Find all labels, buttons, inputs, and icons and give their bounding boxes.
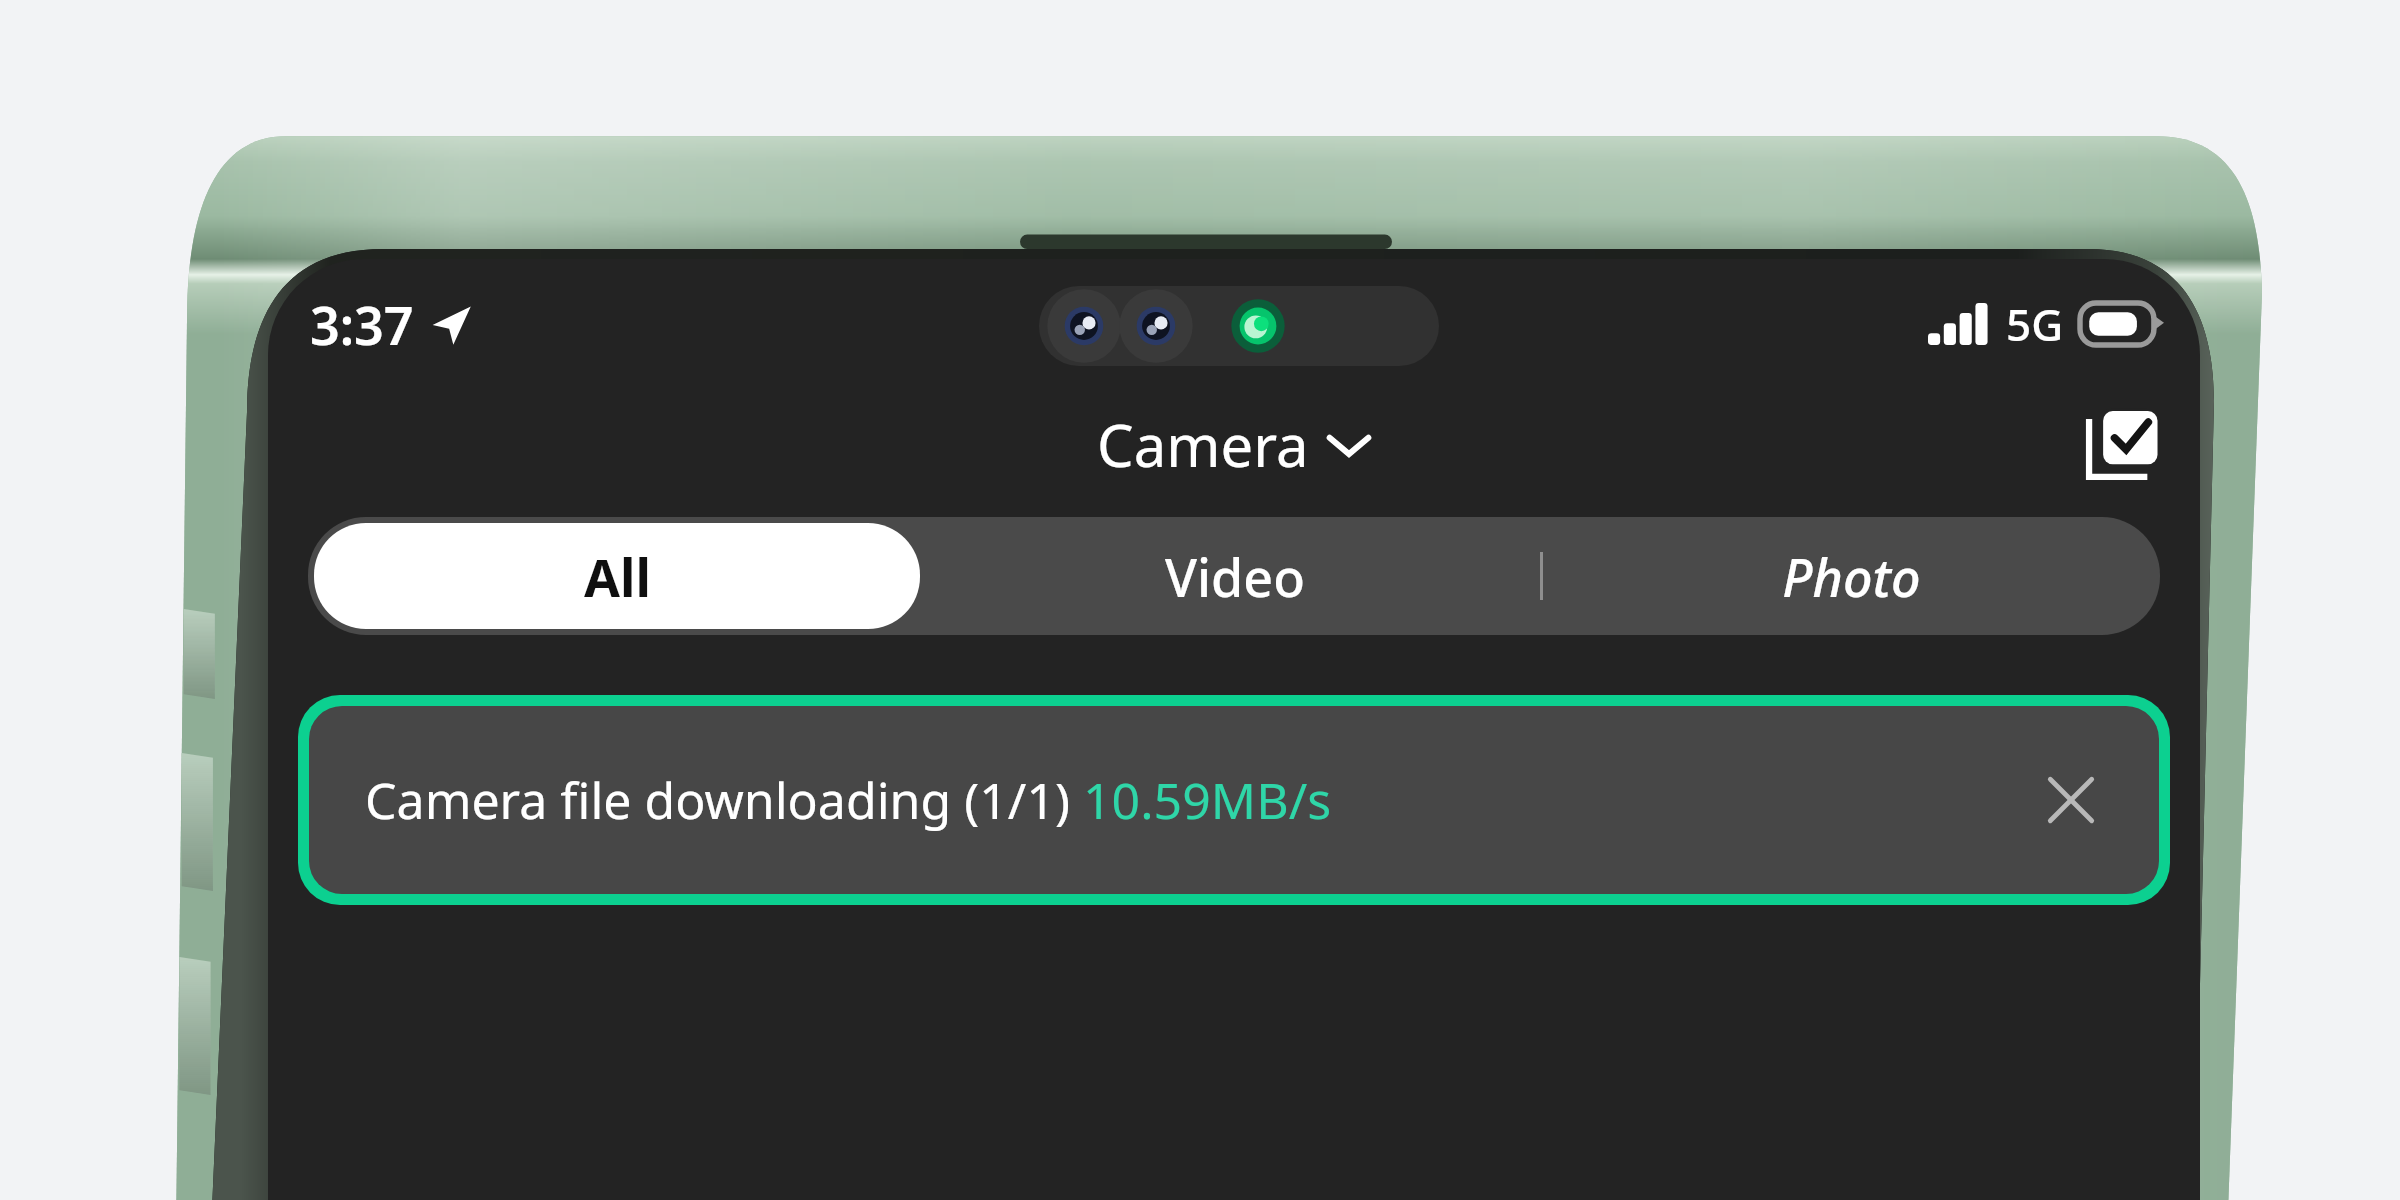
button[interactable]: Video xyxy=(926,517,1543,635)
button[interactable]: Photo xyxy=(1543,517,2160,635)
button[interactable]: Dismiss download xyxy=(2025,754,2117,846)
button[interactable]: All xyxy=(314,523,920,629)
staticText: Photo xyxy=(1782,541,1921,612)
button[interactable]: Select items xyxy=(2074,396,2170,492)
staticText: All xyxy=(584,541,651,612)
staticText: Camera xyxy=(1097,405,1309,484)
staticText: 5G xyxy=(2006,294,2064,354)
staticText: Video xyxy=(1165,541,1305,612)
staticText: 3:37 xyxy=(310,289,414,360)
button[interactable]: Camera xyxy=(1085,399,1383,490)
staticText: Camera file downloading (1/1) xyxy=(365,766,1083,834)
staticText: 10.59MB/s xyxy=(1083,766,1332,834)
button[interactable]: Camera file downloading (1/1) xyxy=(309,706,2159,894)
